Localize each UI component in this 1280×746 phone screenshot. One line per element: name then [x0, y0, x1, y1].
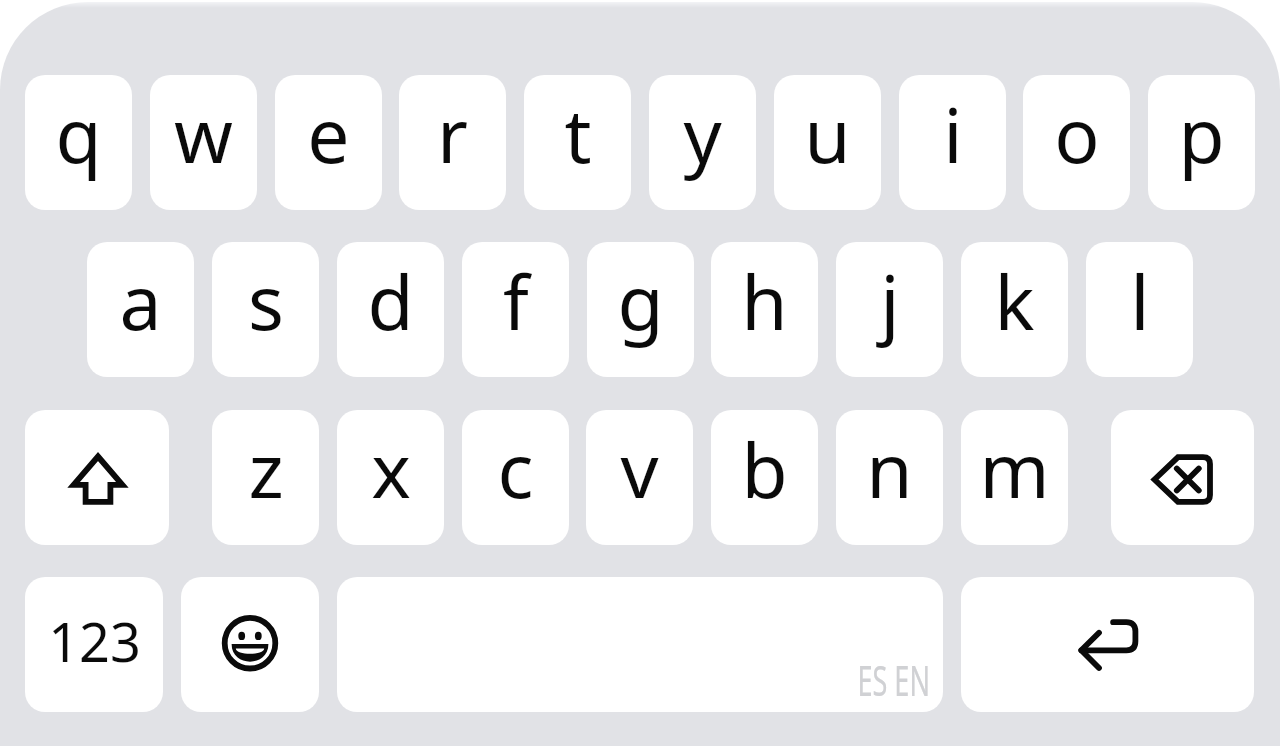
staticText: c — [497, 418, 534, 520]
button[interactable]: q — [25, 75, 132, 210]
staticText: l — [1130, 250, 1150, 352]
staticText: y — [683, 83, 722, 185]
staticText: p — [1178, 83, 1225, 185]
staticText: m — [979, 418, 1050, 520]
button[interactable]: s — [212, 242, 319, 377]
staticText: r — [437, 83, 468, 185]
staticText: i — [943, 83, 963, 185]
staticText: q — [55, 83, 102, 185]
button[interactable]: y — [649, 75, 756, 210]
button[interactable]: w — [150, 75, 257, 210]
staticText: ES EN — [857, 652, 930, 708]
button[interactable]: g — [587, 242, 694, 377]
button[interactable]: f — [462, 242, 569, 377]
button[interactable]: u — [774, 75, 881, 210]
staticText: k — [994, 250, 1035, 352]
staticText: a — [119, 250, 162, 352]
button[interactable]: t — [524, 75, 631, 210]
staticText: g — [617, 250, 664, 352]
button[interactable]: Space — [337, 577, 943, 712]
staticText: n — [866, 418, 913, 520]
button[interactable]: l — [1086, 242, 1193, 377]
staticText: w — [174, 83, 233, 185]
button[interactable]: i — [899, 75, 1006, 210]
staticText: f — [503, 250, 529, 352]
staticText: b — [741, 418, 788, 520]
staticText: x — [371, 418, 411, 520]
staticText: u — [804, 83, 851, 185]
button[interactable]: b — [711, 410, 818, 545]
button[interactable]: a — [87, 242, 194, 377]
staticText: j — [880, 250, 900, 352]
staticText: z — [248, 418, 284, 520]
button[interactable]: v — [586, 410, 693, 545]
button[interactable]: j — [836, 242, 943, 377]
button[interactable]: n — [836, 410, 943, 545]
button[interactable]: p — [1148, 75, 1255, 210]
button[interactable]: Symbols — [25, 577, 163, 712]
staticText: s — [248, 250, 284, 352]
button[interactable]: Shift — [25, 410, 169, 545]
button[interactable]: o — [1023, 75, 1130, 210]
button[interactable]: h — [711, 242, 818, 377]
button[interactable]: e — [275, 75, 382, 210]
button[interactable]: r — [399, 75, 506, 210]
button[interactable]: z — [212, 410, 319, 545]
staticText: e — [307, 83, 350, 185]
button[interactable]: Enter — [961, 577, 1254, 712]
staticText: v — [620, 418, 659, 520]
staticText: h — [741, 250, 788, 352]
staticText: d — [367, 250, 414, 352]
button[interactable]: m — [961, 410, 1068, 545]
button[interactable]: k — [961, 242, 1068, 377]
button[interactable]: d — [337, 242, 444, 377]
staticText: o — [1054, 83, 1100, 185]
button[interactable]: c — [462, 410, 569, 545]
button[interactable]: x — [337, 410, 444, 545]
button[interactable]: Backspace — [1111, 410, 1254, 545]
staticText: 123 — [48, 604, 141, 678]
staticText: t — [564, 83, 592, 185]
button[interactable]: Emoji — [181, 577, 319, 712]
